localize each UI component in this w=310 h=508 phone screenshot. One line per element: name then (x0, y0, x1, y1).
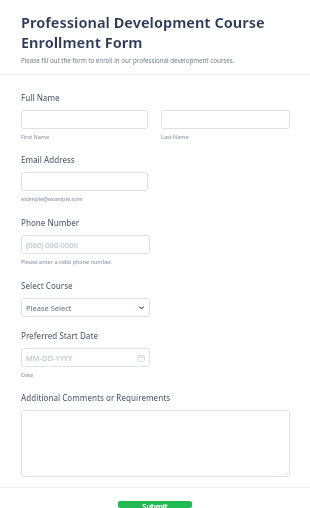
staticText: Full Name (21, 92, 60, 103)
staticText: MM-DD-YYYY (26, 353, 73, 363)
button[interactable] (21, 410, 290, 477)
button[interactable] (161, 110, 290, 129)
staticText: Phone Number (21, 217, 80, 228)
staticText: Professional Development Course (21, 12, 265, 32)
button[interactable] (21, 110, 148, 129)
staticText: Preferred Start Date (21, 330, 99, 341)
staticText: (000) 000-0000 (26, 240, 78, 250)
staticText: Date (21, 371, 34, 378)
button[interactable]: (000) 000-0000 (21, 235, 150, 254)
other: Open calendar (137, 354, 145, 362)
button[interactable]: Submit (118, 501, 192, 508)
staticText: Select Course (21, 280, 73, 291)
staticText: Please enter a valid phone number. (21, 258, 112, 265)
staticText: Additional Comments or Requirements (21, 392, 171, 403)
button[interactable]: Please Select (21, 298, 150, 317)
staticText: Please fill out the form to enroll in ou… (21, 56, 235, 64)
staticText: Enrollment Form (21, 32, 143, 52)
other: Expand course list (138, 304, 145, 311)
staticText: Please Select (26, 303, 72, 313)
button[interactable]: MM-DD-YYYY (21, 348, 150, 367)
button[interactable] (21, 172, 148, 191)
staticText: example@example.com (21, 195, 83, 202)
staticText: Submit (142, 501, 168, 508)
staticText: First Name (21, 133, 50, 140)
staticText: Last Name (161, 133, 189, 140)
staticText: Email Address (21, 154, 75, 165)
